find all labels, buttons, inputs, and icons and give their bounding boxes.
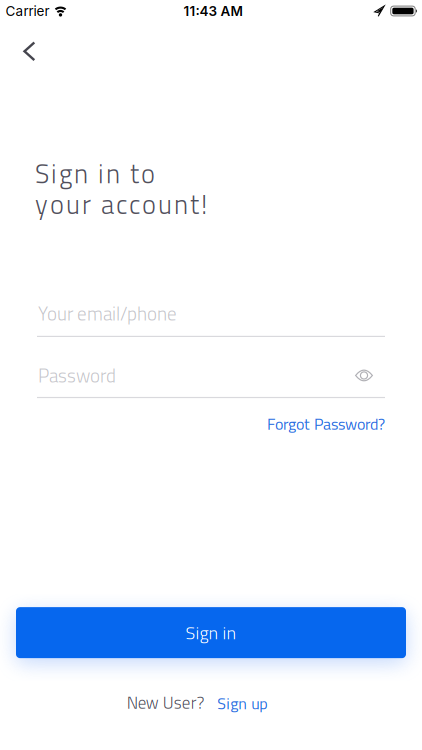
button[interactable]: Sign in [16, 607, 406, 658]
button[interactable]: Forgot Password? [267, 412, 385, 436]
staticText: Sign in [185, 619, 236, 646]
staticText: 11:43 AM [183, 3, 242, 19]
staticText: Forgot Password? [267, 412, 385, 436]
button[interactable]: Back [0, 22, 34, 60]
staticText: y o u r a c c o u n t ! [35, 184, 207, 224]
staticText: Carrier [5, 3, 49, 19]
button[interactable]: Sign up [217, 691, 267, 715]
staticText: Sign up [217, 691, 267, 715]
staticText: New User? [127, 689, 205, 715]
staticText: S i g n i n t o [35, 153, 155, 194]
staticText: Password [38, 361, 116, 390]
button[interactable]: Show password [355, 370, 422, 381]
staticText: Your email/phone [38, 299, 177, 328]
